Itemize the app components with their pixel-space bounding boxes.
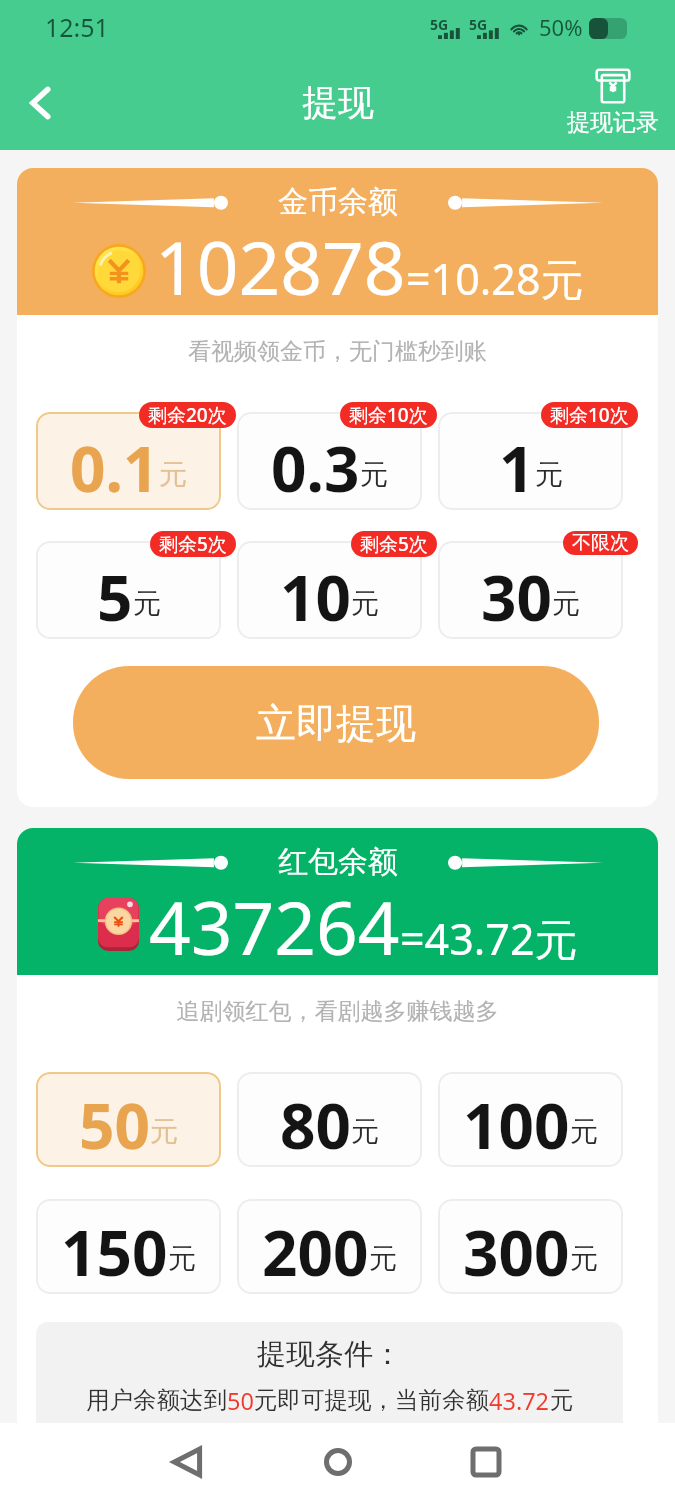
staticText: 0.3 (271, 426, 360, 510)
staticText: 看视频领金币，无门槛秒到账 (17, 337, 658, 366)
button[interactable]: 30 (438, 541, 623, 639)
staticText: 50 (227, 1385, 254, 1417)
staticText: 102878 (155, 217, 406, 315)
staticText: 100 (463, 1083, 570, 1167)
button[interactable]: 10 (237, 541, 422, 639)
staticText: 元 (552, 586, 580, 621)
staticText: 元 (168, 1241, 196, 1276)
staticText: 5 (97, 555, 133, 639)
button[interactable]: 0.1 (36, 412, 221, 510)
staticText: 元 (535, 457, 563, 492)
button[interactable]: Back (155, 1430, 219, 1494)
staticText: 43.72 (489, 1385, 550, 1417)
staticText: 剩余20次 (148, 402, 227, 428)
staticText: 元 (159, 457, 187, 492)
button[interactable]: Recents (454, 1430, 518, 1494)
staticText: 437264 (149, 877, 400, 975)
button[interactable]: 0.3 (237, 412, 422, 510)
staticText: 立即提现 (256, 698, 416, 748)
button[interactable]: Home (306, 1430, 370, 1494)
staticText: 5G (469, 15, 488, 34)
staticText: 提现条件： (257, 1336, 402, 1373)
staticText: 元 (360, 457, 388, 492)
staticText: 元即可提现，当前余额 (254, 1385, 489, 1415)
staticText: 30 (481, 555, 552, 639)
staticText: =10.28元 (406, 249, 584, 308)
staticText: 元 (351, 1114, 379, 1149)
button[interactable]: 返回 (8, 70, 74, 136)
staticText: 提现 (302, 80, 374, 125)
staticText: 元 (570, 1114, 598, 1149)
staticText: 元 (150, 1114, 178, 1149)
button[interactable]: 提现记录 (563, 67, 663, 139)
staticText: 元 (550, 1385, 574, 1415)
staticText: 用户余额达到 (86, 1385, 227, 1415)
staticText: 剩余10次 (550, 402, 629, 428)
staticText: 50 (79, 1083, 150, 1167)
staticText: 剩余10次 (349, 402, 428, 428)
button[interactable]: 80 (237, 1072, 422, 1167)
button[interactable]: 300 (438, 1199, 623, 1294)
staticText: 提现记录 (567, 108, 659, 137)
staticText: 元 (351, 586, 379, 621)
staticText: 剩余5次 (159, 531, 227, 557)
staticText: 50% (539, 12, 583, 42)
button[interactable]: 50 (36, 1072, 221, 1167)
staticText: 元 (133, 586, 161, 621)
button[interactable]: 200 (237, 1199, 422, 1294)
staticText: 200 (262, 1210, 369, 1294)
staticText: 5G (430, 15, 449, 34)
staticText: 10 (280, 555, 351, 639)
staticText: 不限次 (572, 531, 629, 555)
staticText: 150 (61, 1210, 168, 1294)
staticText: 1 (499, 426, 535, 510)
button[interactable]: 1 (438, 412, 623, 510)
staticText: 元 (570, 1241, 598, 1276)
staticText: 追剧领红包，看剧越多赚钱越多 (17, 997, 658, 1026)
staticText: 红包余额 (278, 843, 398, 881)
staticText: 元 (369, 1241, 397, 1276)
staticText: 300 (463, 1210, 570, 1294)
staticText: 12:51 (45, 10, 109, 44)
button[interactable]: 5 (36, 541, 221, 639)
staticText: 80 (280, 1083, 351, 1167)
staticText: =43.72元 (400, 909, 578, 968)
staticText: 0.1 (70, 426, 159, 510)
button[interactable]: 150 (36, 1199, 221, 1294)
button[interactable]: 立即提现 (73, 666, 599, 779)
staticText: 金币余额 (278, 183, 398, 221)
staticText: 剩余5次 (360, 531, 428, 557)
button[interactable]: 100 (438, 1072, 623, 1167)
